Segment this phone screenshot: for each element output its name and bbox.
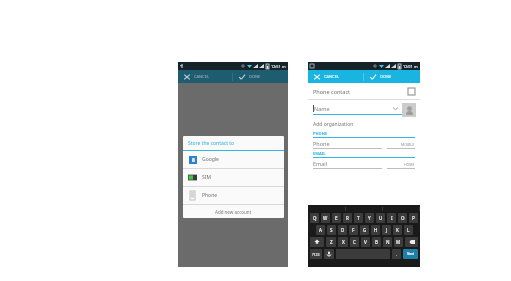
button[interactable]: Phone — [308, 138, 420, 149]
button[interactable]: Voice input — [324, 249, 334, 259]
button[interactable]: W — [321, 213, 330, 223]
button[interactable]: A — [316, 225, 325, 235]
staticText: 8 — [192, 157, 195, 164]
button[interactable]: H — [371, 225, 380, 235]
button[interactable]: SIM — [183, 169, 284, 186]
button[interactable]: I — [387, 213, 396, 223]
button[interactable]: C — [350, 237, 359, 247]
button[interactable] — [346, 205, 383, 212]
button[interactable]: R — [343, 213, 352, 223]
button[interactable]: M — [394, 237, 403, 247]
button[interactable]: Z — [326, 237, 336, 247]
staticText: B — [375, 239, 378, 245]
staticText: Google — [202, 156, 219, 163]
button[interactable]: T — [354, 213, 363, 223]
staticText: Email — [313, 160, 328, 167]
staticText: D — [341, 227, 345, 233]
staticText: A — [319, 227, 322, 233]
staticText: U — [379, 215, 383, 221]
staticText: V — [364, 239, 367, 245]
button[interactable]: ?123 — [310, 249, 322, 259]
staticText: Z — [330, 239, 333, 245]
staticText: Phone contact — [313, 88, 351, 95]
staticText: N — [386, 239, 390, 245]
button[interactable]: G — [360, 225, 369, 235]
button[interactable]: Q — [310, 213, 319, 223]
button[interactable]: DONE — [364, 70, 420, 83]
staticText: HOME — [404, 162, 415, 167]
button[interactable]: E — [332, 213, 341, 223]
staticText: Add new account — [215, 209, 252, 215]
button[interactable]: Phone contact — [308, 83, 420, 99]
staticText: EMAIL — [313, 151, 326, 156]
staticText: DONE — [380, 74, 392, 79]
staticText: P — [412, 215, 415, 221]
staticText: J — [386, 227, 388, 233]
button[interactable]: . — [392, 249, 401, 259]
button[interactable]: P — [409, 213, 418, 223]
staticText: G — [363, 227, 367, 233]
button[interactable]: N — [383, 237, 392, 247]
staticText: L — [407, 227, 410, 233]
staticText: E — [335, 215, 338, 221]
button[interactable]: 8 — [183, 151, 284, 168]
staticText: 12:01 rn — [403, 64, 418, 69]
button[interactable]: Add new account — [183, 205, 284, 218]
staticText: Next — [407, 252, 414, 256]
staticText: Store the contact to — [188, 140, 235, 147]
button[interactable]: V — [361, 237, 370, 247]
staticText: ?123 — [312, 252, 320, 257]
button[interactable]: Next — [403, 249, 418, 259]
staticText: DONE — [249, 74, 261, 79]
button[interactable]: DONE — [233, 70, 288, 83]
button[interactable]: Expand name — [393, 106, 398, 111]
button[interactable]: X — [338, 237, 348, 247]
staticText: 12:51 rn — [271, 64, 286, 69]
button[interactable] — [383, 205, 420, 212]
staticText: X — [342, 239, 345, 245]
button[interactable]: Phone — [183, 187, 284, 204]
staticText: Phone — [313, 140, 330, 147]
button[interactable]: Y — [365, 213, 374, 223]
button[interactable]: U — [376, 213, 385, 223]
staticText: K — [396, 227, 399, 233]
button[interactable]: O — [398, 213, 407, 223]
staticText: Phone — [202, 192, 218, 199]
button[interactable]: Email — [308, 158, 420, 169]
button[interactable]: F — [349, 225, 358, 235]
staticText: PHONE — [313, 131, 328, 136]
staticText: SIM — [202, 174, 211, 181]
staticText: R — [346, 215, 349, 221]
staticText: F — [352, 227, 355, 233]
button[interactable]: J — [382, 225, 391, 235]
staticText: CANCEL — [194, 74, 209, 79]
button[interactable] — [308, 205, 346, 212]
staticText: Add organization — [313, 121, 354, 128]
button[interactable]: S — [327, 225, 336, 235]
staticText: Y — [368, 215, 371, 221]
button[interactable]: Backspace — [405, 237, 418, 247]
staticText: M — [396, 239, 401, 245]
staticText: Name — [314, 105, 330, 112]
staticText: W — [323, 215, 328, 221]
staticText: T — [357, 215, 360, 221]
staticText: H — [374, 227, 378, 233]
button[interactable]: CANCEL — [308, 70, 363, 83]
button[interactable]: Shift — [310, 237, 324, 247]
button[interactable]: Contact photo — [402, 103, 416, 117]
button[interactable]: K — [393, 225, 402, 235]
staticText: MOBILE — [401, 142, 415, 147]
staticText: CANCEL — [324, 74, 339, 79]
staticText: . — [396, 252, 398, 257]
button[interactable]: CANCEL — [178, 70, 232, 83]
staticText: O — [401, 215, 405, 221]
button[interactable]: B — [372, 237, 381, 247]
button[interactable]: D — [338, 225, 347, 235]
staticText: C — [353, 239, 356, 245]
staticText: S — [330, 227, 333, 233]
button[interactable]: L — [404, 225, 413, 235]
staticText: I — [391, 215, 393, 221]
staticText: Q — [313, 215, 317, 221]
